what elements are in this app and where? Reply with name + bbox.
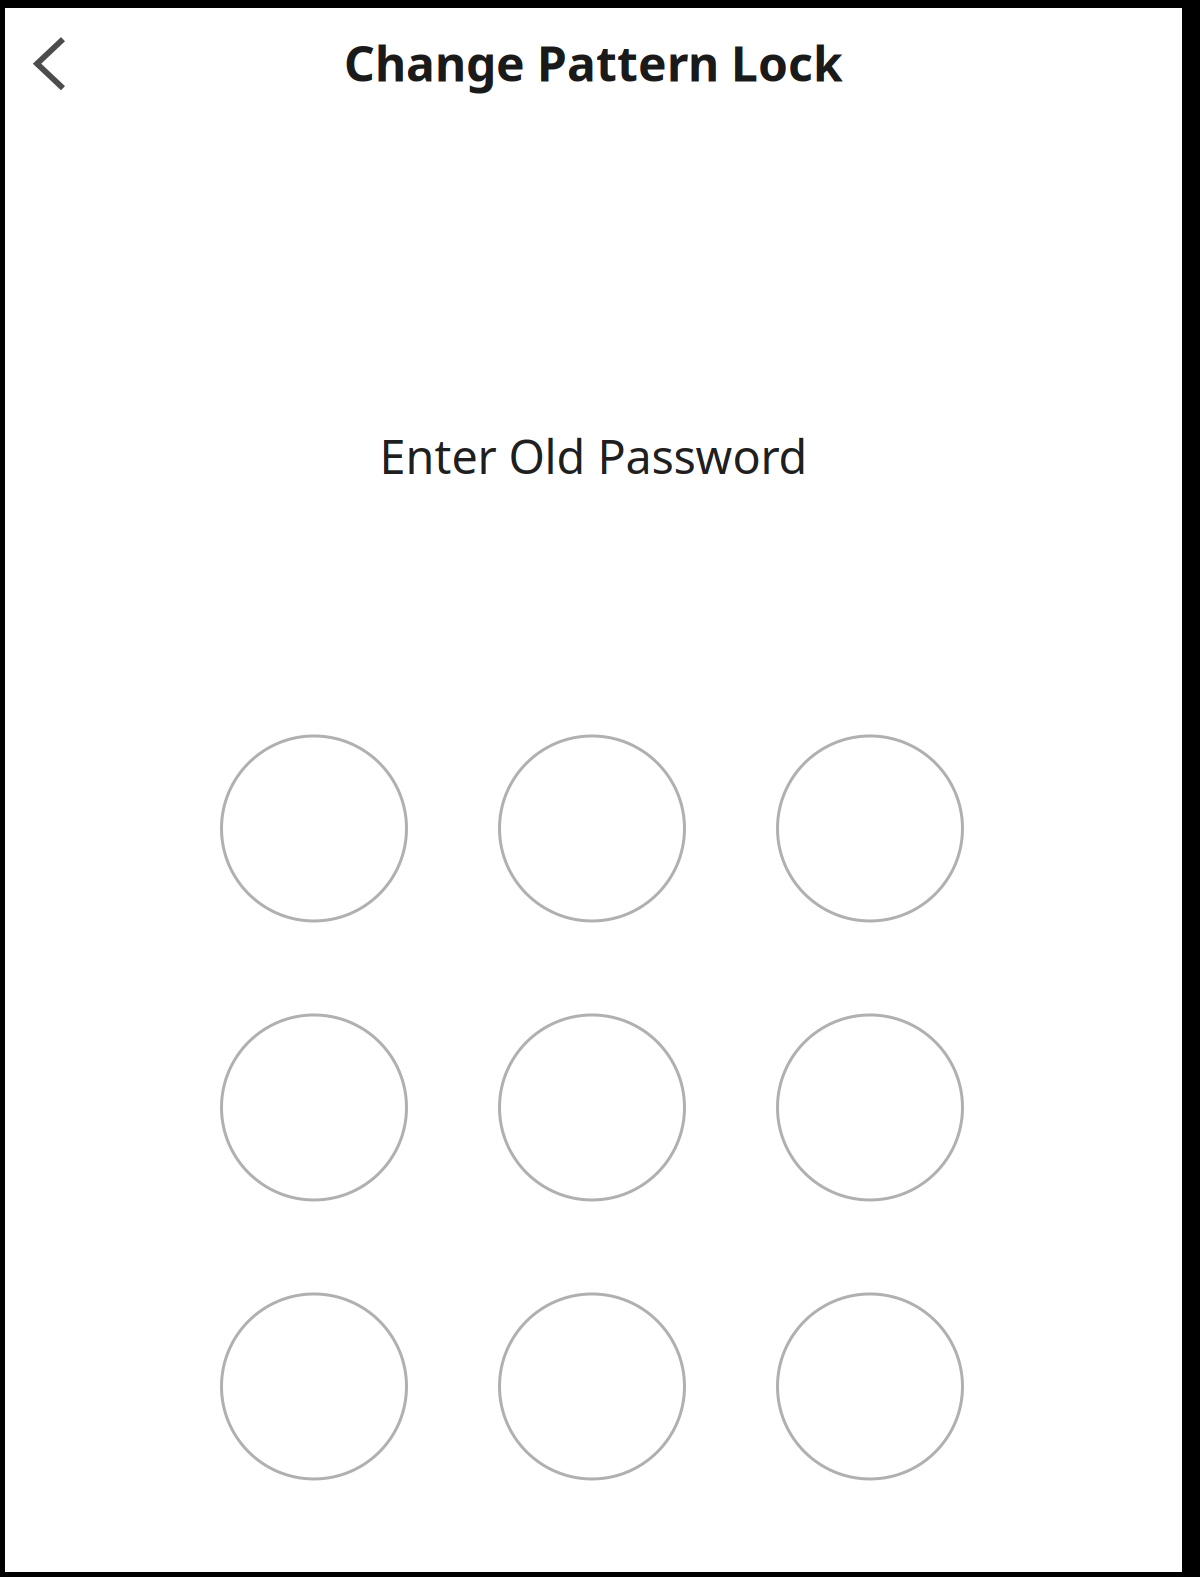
button[interactable]: Pattern dot 8	[499, 1294, 684, 1479]
staticText: Enter Old Password	[379, 425, 807, 487]
button[interactable]: Pattern dot 2	[499, 736, 684, 921]
button[interactable]: Pattern dot 9	[777, 1294, 962, 1479]
button[interactable]: Pattern dot 5	[499, 1015, 684, 1200]
staticText: Change Pattern Lock	[344, 31, 843, 95]
button[interactable]: Pattern dot 4	[221, 1015, 406, 1200]
button[interactable]: Back	[5, 8, 95, 120]
button[interactable]: Pattern dot 3	[777, 736, 962, 921]
button[interactable]: Pattern dot 6	[777, 1015, 962, 1200]
button[interactable]: Pattern dot 1	[221, 736, 406, 921]
button[interactable]: Pattern dot 7	[221, 1294, 406, 1479]
